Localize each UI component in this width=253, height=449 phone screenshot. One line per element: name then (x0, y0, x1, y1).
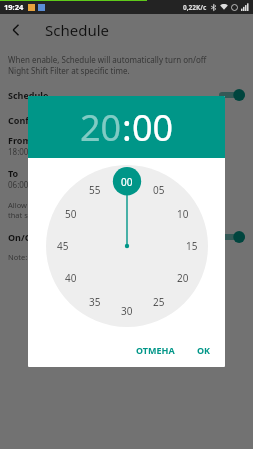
staticText: When enable, Schedule will automatically… (8, 54, 207, 65)
button[interactable]: 50 (59, 202, 83, 226)
button[interactable]: 35 (83, 290, 107, 314)
staticText: 55 (89, 183, 101, 197)
staticText: 15 (186, 239, 198, 253)
button[interactable]: 45 (51, 234, 75, 258)
staticText: ОТМЕНА (136, 344, 175, 356)
button[interactable]: On/Off (0, 228, 253, 246)
staticText: that schedule. (8, 210, 58, 220)
button[interactable]: 20 (171, 266, 195, 290)
button[interactable]: 55 (83, 178, 107, 202)
staticText: 10 (177, 207, 189, 221)
staticText: 40 (65, 271, 77, 285)
staticText: OK (197, 344, 211, 356)
staticText: 19:24 (4, 2, 24, 12)
staticText: Allow the filter to be turned on/off by (8, 200, 139, 210)
button[interactable]: Configure (0, 112, 253, 128)
button[interactable]: 15 (180, 234, 204, 258)
staticText: 0,22K/c (183, 3, 207, 12)
staticText: 45 (57, 239, 69, 253)
button[interactable]: 25 (147, 290, 171, 314)
staticText: Note: requires permission. (8, 252, 102, 262)
button[interactable]: 40 (59, 266, 83, 290)
button[interactable]: 05 (147, 178, 171, 202)
staticText: Configure (8, 114, 53, 126)
button[interactable]: From (0, 132, 253, 159)
button[interactable]: 00 (115, 170, 139, 194)
staticText: From (8, 134, 32, 146)
button[interactable]: 10 (171, 202, 195, 226)
staticText: 00 (121, 175, 133, 189)
button[interactable]: OK (191, 339, 217, 361)
button[interactable]: 30 (115, 299, 139, 323)
staticText: 20 (177, 271, 189, 285)
staticText: Night Shift Filter at specific time. (8, 65, 130, 76)
staticText: 05 (153, 183, 165, 197)
button[interactable]: Schedule (0, 86, 253, 104)
staticText: 25 (153, 295, 165, 309)
staticText: Schedule (8, 89, 49, 101)
button[interactable]: ОТМЕНА (130, 339, 181, 361)
button[interactable]: To (0, 165, 253, 192)
staticText: 00 (132, 103, 174, 152)
staticText: : (122, 103, 132, 152)
staticText: Schedule (45, 20, 109, 40)
button[interactable]: Back (0, 14, 32, 46)
staticText: 30 (121, 304, 133, 318)
staticText: On/Off (8, 231, 39, 243)
button[interactable]: 20 (80, 103, 122, 152)
staticText: 06:00 (8, 179, 29, 190)
staticText: To (8, 167, 19, 179)
button[interactable]: 00 (132, 103, 174, 152)
staticText: 35 (89, 295, 101, 309)
staticText: 20 (80, 103, 122, 152)
staticText: 18:00 (8, 146, 29, 157)
staticText: 50 (65, 207, 77, 221)
